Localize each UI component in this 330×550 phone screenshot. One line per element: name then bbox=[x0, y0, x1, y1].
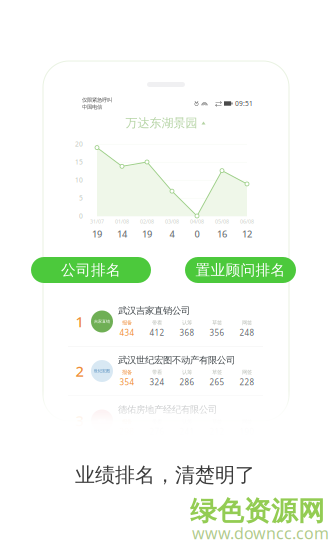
staticText: 万达东湖景园 bbox=[125, 116, 197, 130]
staticText: 20 bbox=[75, 140, 83, 148]
staticText: 12 bbox=[242, 228, 252, 240]
staticText: 412 bbox=[149, 327, 164, 338]
button[interactable]: 2 bbox=[57, 346, 274, 395]
button[interactable]: 置业顾问排名 bbox=[185, 257, 296, 283]
staticText: 世纪宏图 bbox=[94, 368, 110, 373]
staticText: 06/08 bbox=[240, 218, 254, 225]
button[interactable]: 1 bbox=[57, 297, 274, 346]
staticText: 德佑房地产经纪有限公司 bbox=[118, 404, 217, 415]
staticText: 434 bbox=[119, 327, 134, 338]
button[interactable]: 公司排名 bbox=[31, 257, 151, 283]
staticText: 吉家直销 bbox=[94, 319, 110, 324]
staticText: 置业顾问排名 bbox=[195, 261, 285, 279]
staticText: 网签 bbox=[242, 369, 252, 375]
staticText: 248 bbox=[239, 327, 254, 338]
staticText: 武汉吉家直销公司 bbox=[118, 305, 190, 316]
staticText: 0 bbox=[194, 228, 199, 240]
staticText: 草签 bbox=[212, 369, 222, 375]
staticText: 368 bbox=[179, 327, 194, 338]
staticText: 草签 bbox=[212, 319, 222, 326]
staticText: 1 bbox=[75, 312, 83, 331]
staticText: 286 bbox=[179, 377, 194, 387]
staticText: 05/08 bbox=[215, 218, 229, 225]
staticText: 武汉世纪宏图不动产有限公司 bbox=[118, 354, 235, 366]
staticText: 03/08 bbox=[165, 218, 179, 225]
staticText: 认筹 bbox=[182, 369, 192, 375]
staticText: 中国电信 bbox=[82, 104, 102, 110]
staticText: 354 bbox=[119, 377, 134, 387]
staticText: 3 bbox=[75, 411, 83, 430]
staticText: 带看 bbox=[152, 319, 162, 326]
staticText: 228 bbox=[239, 377, 254, 387]
staticText: 0 bbox=[79, 212, 83, 220]
staticText: 认筹 bbox=[182, 319, 192, 326]
staticText: 265 bbox=[209, 377, 224, 387]
staticText: 09:51 bbox=[235, 99, 253, 108]
staticText: 19 bbox=[142, 228, 152, 240]
staticText: 网签 bbox=[242, 319, 252, 326]
staticText: 04/08 bbox=[190, 218, 204, 225]
staticText: 19 bbox=[92, 228, 102, 240]
staticText: 01/08 bbox=[115, 218, 129, 225]
staticText: 仅限紧急呼叫 bbox=[82, 97, 112, 103]
staticText: 报备 bbox=[122, 319, 132, 326]
staticText: 公司排名 bbox=[61, 261, 121, 279]
staticText: 324 bbox=[149, 377, 164, 387]
staticText: 31/07 bbox=[90, 218, 104, 225]
staticText: 绿色资源网 bbox=[190, 495, 325, 527]
staticText: www.downcc.com bbox=[192, 522, 329, 544]
staticText: 4 bbox=[169, 228, 174, 240]
staticText: 02/08 bbox=[140, 218, 154, 225]
staticText: 10 bbox=[75, 176, 83, 184]
staticText: 5 bbox=[79, 194, 83, 202]
staticText: 带看 bbox=[152, 369, 162, 375]
staticText: 16 bbox=[217, 228, 227, 240]
staticText: 14 bbox=[117, 228, 127, 240]
staticText: 报备 bbox=[122, 369, 132, 375]
staticText: 2 bbox=[75, 361, 83, 381]
staticText: 15 bbox=[75, 158, 83, 166]
staticText: 业绩排名，清楚明了 bbox=[75, 463, 255, 487]
button[interactable]: 3 bbox=[57, 396, 274, 445]
staticText: 356 bbox=[209, 327, 224, 338]
